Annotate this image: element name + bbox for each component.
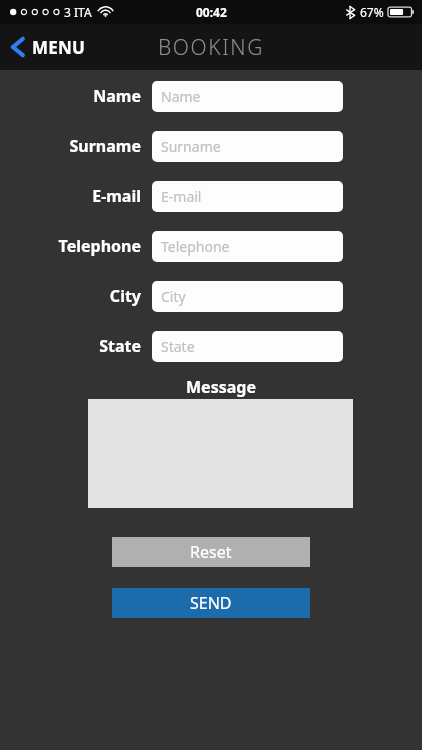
staticText: Telephone [161,237,230,256]
button[interactable]: Reset [112,537,310,567]
button[interactable]: MENU [0,29,98,65]
staticText: Name [161,87,201,106]
staticText: Reset [190,541,232,563]
button[interactable]: City [152,281,343,312]
staticText: Message [186,376,256,398]
button[interactable]: Telephone [152,231,343,262]
staticText: Telephone [58,235,141,257]
staticText: State [161,337,195,356]
staticText: E-mail [92,185,141,207]
staticText: 00:42 [196,4,227,20]
staticText: City [109,285,141,307]
staticText: SEND [190,592,232,614]
button[interactable]: E-mail [152,181,343,212]
button[interactable]: State [152,331,343,362]
staticText: City [161,287,186,306]
staticText: E-mail [161,187,202,206]
staticText: BOOKING [158,33,265,62]
staticText: Surname [161,137,221,156]
staticText: 3 ITA [64,4,92,20]
staticText: MENU [32,36,86,59]
button[interactable]: Surname [152,131,343,162]
staticText: State [99,335,141,357]
button[interactable]: Name [152,81,343,112]
staticText: Surname [69,135,141,157]
button[interactable]: SEND [112,588,310,618]
staticText: Name [93,85,141,107]
staticText: 67% [360,4,384,20]
